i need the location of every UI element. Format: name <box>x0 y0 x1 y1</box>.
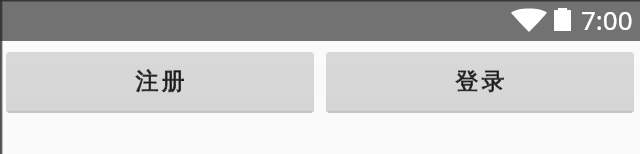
staticText: 登录 <box>454 67 506 96</box>
staticText: 注册 <box>134 67 186 96</box>
staticText: 注册 <box>134 67 186 96</box>
button[interactable]: 注册 <box>6 52 314 113</box>
staticText: 登录 <box>454 67 506 96</box>
other: Battery full <box>554 8 571 31</box>
button[interactable]: 登录 <box>326 52 634 113</box>
staticText: 7:00 <box>581 2 633 37</box>
other: Wi-Fi signal <box>511 9 547 32</box>
